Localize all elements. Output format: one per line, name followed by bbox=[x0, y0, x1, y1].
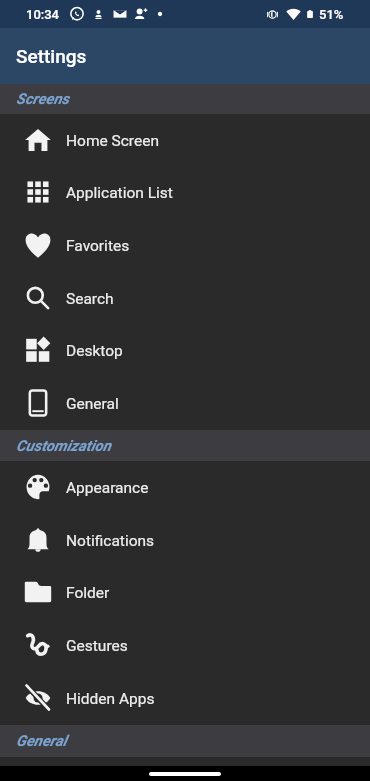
staticText: Hidden Apps bbox=[66, 690, 155, 708]
staticText: Gestures bbox=[66, 637, 128, 655]
staticText: General bbox=[66, 395, 119, 413]
button[interactable]: Desktop bbox=[0, 325, 370, 377]
staticText: Screens bbox=[16, 90, 70, 108]
staticText: Notifications bbox=[66, 532, 155, 550]
staticText: 10:34 bbox=[26, 7, 60, 22]
button[interactable]: Application List bbox=[0, 167, 370, 219]
staticText: Home Screen bbox=[66, 132, 159, 150]
button[interactable]: Notifications bbox=[0, 514, 370, 567]
other: Home bbox=[149, 772, 221, 776]
button[interactable]: Appearance bbox=[0, 461, 370, 514]
staticText: Favorites bbox=[66, 237, 130, 255]
button[interactable]: Gestures bbox=[0, 619, 370, 672]
button[interactable]: Home Screen bbox=[0, 114, 370, 167]
button[interactable]: Folder bbox=[0, 567, 370, 619]
staticText: Application List bbox=[66, 184, 173, 202]
staticText: Settings bbox=[16, 45, 87, 67]
staticText: Appearance bbox=[66, 479, 149, 497]
staticText: Folder bbox=[66, 584, 110, 602]
staticText: Customization bbox=[16, 437, 111, 455]
button[interactable]: Hidden Apps bbox=[0, 672, 370, 725]
button[interactable]: Search bbox=[0, 272, 370, 325]
button[interactable]: General bbox=[0, 377, 370, 430]
staticText: Desktop bbox=[66, 342, 123, 360]
staticText: General bbox=[16, 732, 67, 750]
staticText: Search bbox=[66, 290, 114, 308]
staticText: 51% bbox=[319, 7, 344, 22]
button[interactable]: Favorites bbox=[0, 219, 370, 272]
